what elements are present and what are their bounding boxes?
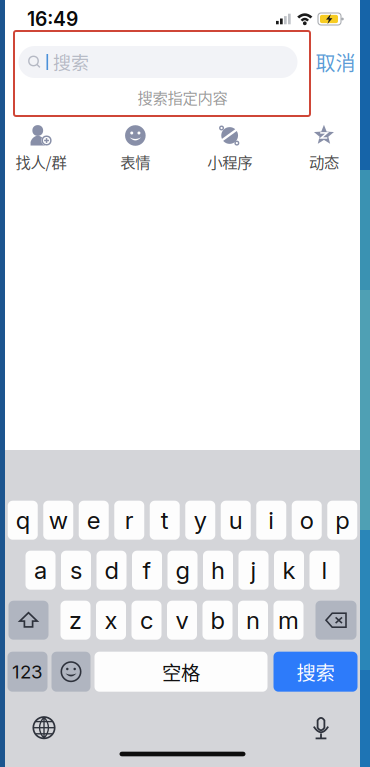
button[interactable]: 小程序 [194,119,266,175]
button[interactable]: o [292,501,322,540]
staticText: v [175,606,188,635]
staticText: f [142,556,151,585]
button[interactable]: 取消 [309,46,361,78]
staticText: 表情 [120,150,150,173]
button[interactable]: 表情 [99,119,171,175]
button[interactable]: m [273,601,303,640]
staticText: l [321,556,327,585]
button[interactable]: d [96,551,126,590]
staticText: t [161,506,169,535]
button[interactable]: Dictate [301,713,341,743]
staticText: 小程序 [207,150,252,173]
button[interactable]: r [114,501,144,540]
button[interactable]: j [238,551,268,590]
staticText: g [175,556,189,585]
staticText: c [140,606,153,635]
button[interactable]: Emoji [51,652,90,692]
staticText: i [268,506,274,535]
staticText: 搜索指定内容 [137,86,227,108]
button[interactable]: s [61,551,91,590]
button[interactable]: f [132,551,162,590]
button[interactable]: 123 [7,652,47,692]
staticText: e [87,506,101,535]
staticText: s [70,556,82,585]
staticText: u [229,506,243,535]
staticText: z [69,606,82,635]
button[interactable]: n [238,601,268,640]
button[interactable]: w [43,501,73,540]
staticText: h [211,556,225,585]
button[interactable]: Shift [8,601,48,640]
staticText: o [300,506,314,535]
staticText: 空格 [162,658,200,686]
staticText: 搜索 [296,658,334,686]
button[interactable]: h [203,551,233,590]
button[interactable]: v [167,601,197,640]
staticText: p [335,506,349,535]
staticText: q [16,506,30,535]
button[interactable]: l [309,551,339,590]
button[interactable]: z [60,601,90,640]
button[interactable]: c [131,601,161,640]
staticText: 搜索 [53,49,89,75]
button[interactable]: t [150,501,180,540]
staticText: a [34,556,47,585]
button[interactable]: q [8,501,38,540]
button[interactable]: 搜索 [273,652,357,692]
staticText: j [250,556,256,585]
staticText: b [210,606,224,635]
button[interactable]: u [221,501,251,540]
staticText: k [282,556,295,585]
staticText: r [125,506,134,535]
button[interactable]: i [256,501,286,540]
staticText: m [278,606,299,635]
button[interactable]: x [96,601,126,640]
staticText: 动态 [309,150,339,173]
staticText: y [194,506,207,535]
staticText: n [246,606,260,635]
staticText: d [104,556,118,585]
button[interactable]: g [167,551,197,590]
button[interactable]: 找人/群 [5,119,77,175]
staticText: x [104,606,117,635]
staticText: 取消 [315,47,355,76]
button[interactable]: Change keyboard [24,713,64,743]
staticText: 找人/群 [15,150,66,173]
staticText: 16:49 [27,7,78,31]
staticText: 123 [12,660,43,683]
button[interactable]: p [327,501,357,540]
button[interactable]: 空格 [94,652,267,692]
button[interactable]: 动态 [288,119,360,175]
button[interactable]: y [185,501,215,540]
button[interactable]: k [274,551,304,590]
staticText: w [49,506,68,535]
button[interactable]: b [202,601,232,640]
button[interactable]: e [79,501,109,540]
button[interactable]: a [25,551,55,590]
button[interactable]: Delete [315,601,356,640]
